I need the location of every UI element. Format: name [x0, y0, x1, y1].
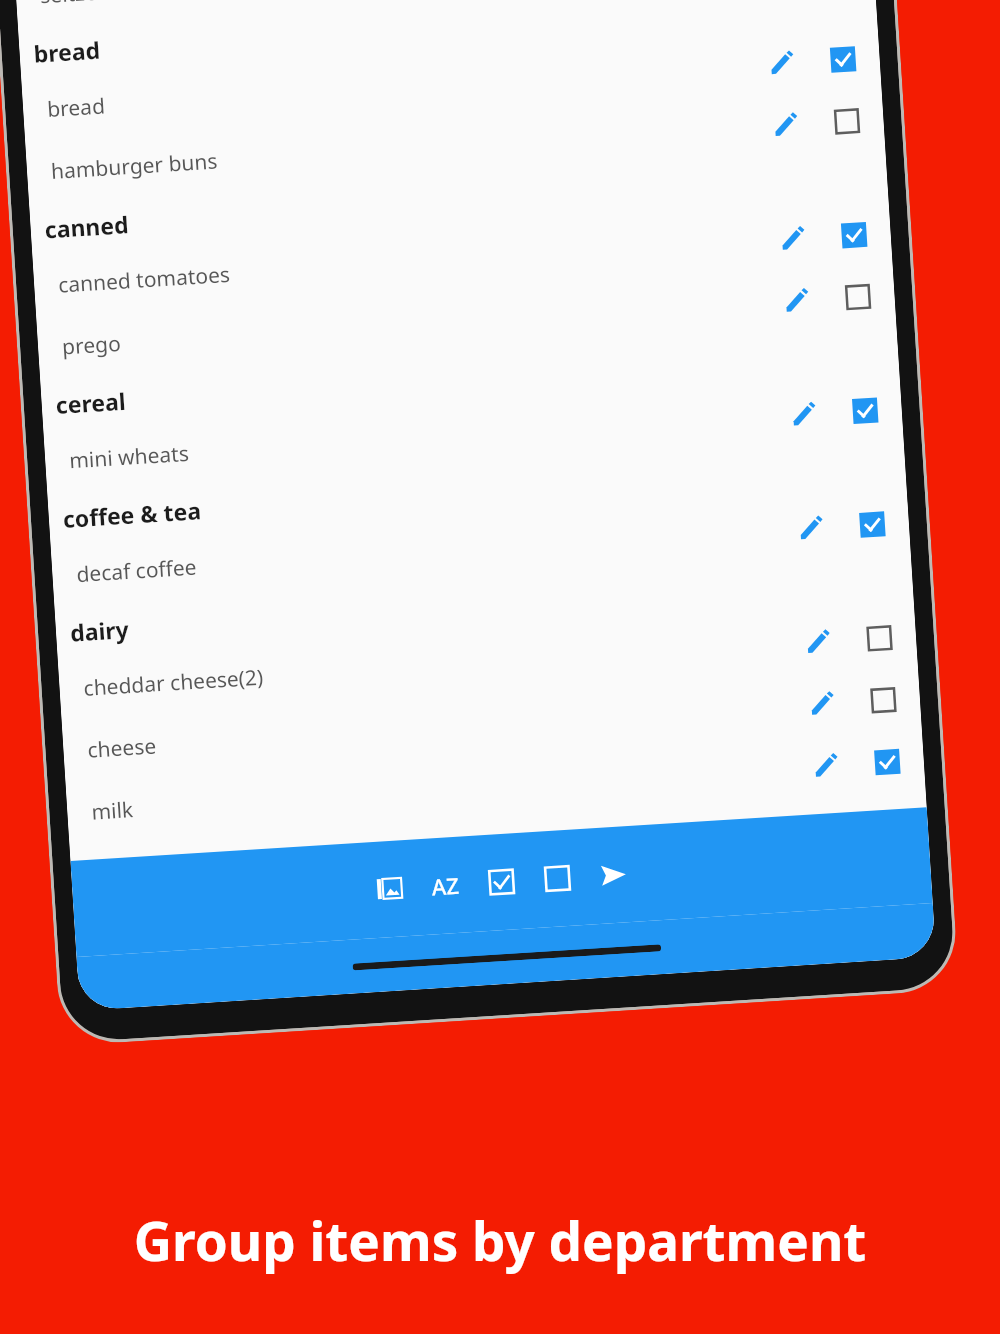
staticText: milk [90, 795, 134, 827]
staticText: dairy [69, 613, 130, 648]
staticText: Group items by department [0, 1204, 1000, 1276]
button[interactable]: hamburger buns [25, 88, 885, 203]
button[interactable]: Toggle tortillas [873, 909, 922, 958]
button[interactable]: Toggle sour cream [866, 799, 915, 848]
button[interactable]: Edit cheddar cheese(2) [793, 617, 841, 666]
staticText: decaf coffee [76, 553, 198, 589]
button[interactable]: Edit mini wheats [778, 390, 827, 439]
staticText: canned tomatoes [57, 260, 231, 300]
staticText: cereal [55, 385, 127, 420]
staticText: prego [61, 329, 122, 361]
button[interactable]: bread [18, 0, 878, 80]
staticText: cheddar cheese(2) [83, 663, 264, 703]
button[interactable]: Images [360, 859, 419, 919]
button[interactable]: Toggle cheese [858, 675, 907, 724]
staticText: mini wheats [68, 439, 190, 475]
staticText: coffee & tea [62, 494, 203, 534]
button[interactable]: canned tomatoes [32, 201, 892, 317]
button[interactable]: sour cream [69, 790, 930, 906]
button[interactable]: Edit canned tomatoes [767, 214, 816, 263]
button[interactable]: Edit milk [800, 741, 849, 790]
staticText: bread [46, 91, 106, 124]
button[interactable]: Toggle canned tomatoes [829, 210, 878, 259]
staticText: bread [33, 34, 101, 69]
staticText: cheese [87, 731, 157, 765]
button[interactable]: Edit prego [771, 276, 820, 325]
button[interactable]: Send list [584, 845, 643, 905]
button[interactable]: Edit decaf coffee [786, 504, 834, 552]
button[interactable]: bread [21, 26, 881, 142]
button[interactable]: prego [36, 263, 896, 379]
staticText: AZ [431, 870, 461, 901]
button[interactable]: mini wheats [43, 377, 904, 493]
button[interactable]: Toggle mini wheats [840, 386, 889, 435]
button[interactable]: decaf coffee [50, 491, 911, 607]
button[interactable]: Edit bread [756, 38, 805, 87]
button[interactable]: Toggle decaf coffee [847, 500, 896, 548]
button[interactable]: cheese [62, 666, 922, 782]
button[interactable]: coffee & tea [47, 439, 907, 545]
staticText: hamburger buns [50, 146, 219, 186]
button[interactable]: tortillas [76, 904, 936, 1011]
button[interactable]: ethnic foods [73, 852, 933, 958]
button[interactable]: Toggle cheddar cheese(2) [855, 613, 903, 662]
staticText: canned [44, 208, 129, 244]
button[interactable]: Sort A to Z [416, 856, 475, 915]
button[interactable]: cheddar cheese(2) [58, 605, 918, 720]
staticText: sour cream [94, 853, 208, 889]
button[interactable]: seltzer [14, 0, 874, 28]
button[interactable]: Toggle prego [833, 272, 882, 321]
button[interactable]: Toggle bread [818, 35, 867, 83]
staticText: seltzer [39, 0, 107, 10]
button[interactable]: Toggle hamburger buns [822, 96, 871, 145]
button[interactable]: Uncheck all [528, 849, 587, 908]
button[interactable]: Toggle milk [862, 737, 911, 786]
button[interactable]: milk [65, 728, 926, 844]
button[interactable]: Edit sour cream [804, 803, 853, 852]
button[interactable]: Edit cheese [797, 679, 845, 728]
button[interactable]: Check all [472, 852, 531, 912]
button[interactable]: dairy [54, 553, 914, 658]
button[interactable]: Edit hamburger buns [760, 100, 809, 149]
button[interactable]: canned [29, 149, 889, 255]
button[interactable]: cereal [40, 325, 900, 431]
